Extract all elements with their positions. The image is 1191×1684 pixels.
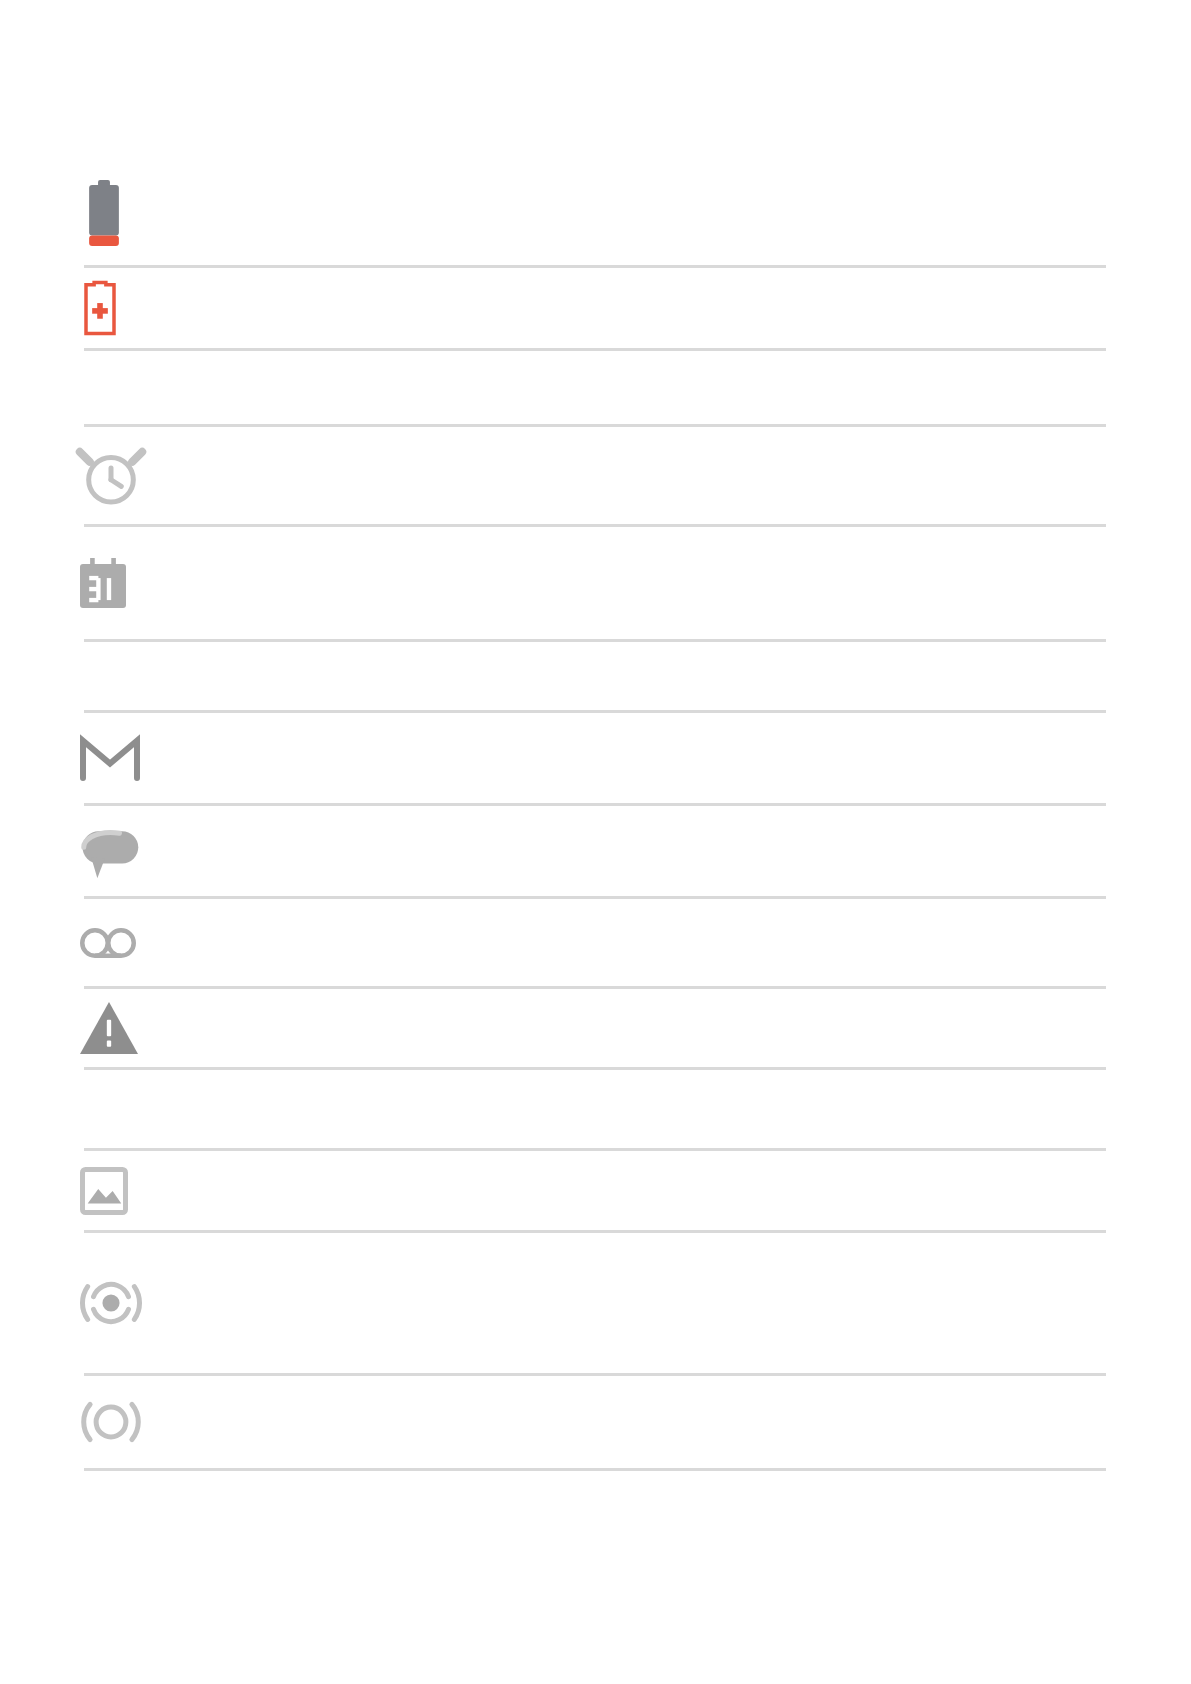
button[interactable]: Alarm [0, 427, 1191, 527]
button[interactable]: Item [0, 351, 1191, 427]
button[interactable]: Item [0, 642, 1191, 713]
button[interactable]: Mail [0, 713, 1191, 806]
button[interactable]: Battery saver [0, 268, 1191, 351]
button[interactable]: Battery low [0, 160, 1191, 268]
button[interactable]: Vibrate [0, 1233, 1191, 1376]
button[interactable]: Messages [0, 806, 1191, 899]
button[interactable]: Warning [0, 989, 1191, 1070]
button[interactable]: Voicemail [0, 899, 1191, 989]
button[interactable]: Calendar [0, 527, 1191, 642]
button[interactable]: Item [0, 1070, 1191, 1151]
button[interactable]: Image [0, 1151, 1191, 1233]
button[interactable]: Ring [0, 1376, 1191, 1471]
